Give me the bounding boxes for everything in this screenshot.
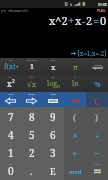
staticText: f(x) <box>4 62 16 72</box>
staticText: √x <box>27 79 37 89</box>
button[interactable]: − <box>86 144 108 162</box>
staticText: 9 <box>50 110 56 124</box>
staticText: e <box>74 75 76 78</box>
staticText: PLAN. <box>97 9 106 13</box>
button[interactable]: 1 <box>0 144 21 162</box>
staticText: − <box>94 147 100 159</box>
staticText: x^n nth power of x <box>1 9 28 13</box>
staticText: equal <box>94 162 101 165</box>
staticText: log <box>51 75 55 78</box>
button[interactable]: 2 <box>21 144 42 162</box>
button[interactable]: constants <box>21 58 42 75</box>
staticText: n <box>57 83 60 89</box>
button[interactable]: x squared <box>0 75 21 92</box>
staticText: ] <box>97 107 98 110</box>
staticText: copy <box>8 92 14 95</box>
button[interactable]: 6 <box>42 126 64 144</box>
staticText: . <box>30 165 33 177</box>
button[interactable]: 5 <box>21 126 42 144</box>
button[interactable]: + <box>64 144 86 162</box>
button[interactable]: × <box>64 126 86 144</box>
staticText: 7 <box>8 110 14 124</box>
button[interactable]: natural logarithm <box>64 75 86 92</box>
staticText: % <box>94 79 101 89</box>
staticText: 000 <box>8 162 13 165</box>
staticText: log <box>47 79 57 89</box>
staticText: x^2 <box>49 13 68 28</box>
button[interactable]: Backspace <box>64 92 86 107</box>
staticText: x <box>75 13 82 28</box>
button[interactable]: logarithm base n <box>42 75 64 92</box>
button[interactable]: function of x <box>0 58 21 75</box>
staticText: x <box>7 78 12 89</box>
staticText: + <box>68 13 75 28</box>
button[interactable]: expand settings <box>86 58 108 75</box>
button[interactable]: square root <box>21 75 42 92</box>
staticText: C <box>94 95 101 107</box>
staticText: {x=1,x=-2} <box>77 49 107 57</box>
staticText: expand <box>92 66 103 70</box>
button[interactable]: 4 <box>0 126 21 144</box>
staticText: 5 <box>29 128 35 142</box>
staticText: 8 <box>29 110 35 124</box>
staticText: x <box>52 162 54 165</box>
staticText: E <box>50 165 56 177</box>
button[interactable]: 8 <box>21 107 42 126</box>
staticText: redo <box>50 92 56 95</box>
button[interactable]: x^n nth power of x <box>0 8 108 58</box>
button[interactable]: percent <box>86 75 108 92</box>
staticText: out <box>95 92 99 95</box>
button[interactable]: 000 <box>0 162 21 180</box>
staticText: + <box>72 147 78 159</box>
button[interactable]: Copy <box>0 92 21 107</box>
staticText: ) <box>95 111 99 123</box>
button[interactable]: Clear <box>86 92 108 107</box>
staticText: vars. <box>50 58 56 61</box>
staticText: x <box>51 62 56 72</box>
staticText: 3 <box>50 146 56 160</box>
staticText: 2 <box>86 13 93 28</box>
button[interactable]: 7 <box>0 107 21 126</box>
button[interactable]: 9 <box>42 107 64 126</box>
staticText: x^y <box>8 75 13 78</box>
button[interactable]: . <box>21 162 42 180</box>
staticText: 6 <box>50 128 56 142</box>
staticText: del <box>73 92 77 95</box>
staticText: ÷ <box>95 130 100 141</box>
staticText: 1 <box>30 62 34 72</box>
button[interactable]: Paste <box>21 92 42 107</box>
staticText: mod <box>69 168 82 175</box>
staticText: × <box>73 130 78 141</box>
staticText: 1 <box>8 146 14 160</box>
staticText: paste <box>28 92 35 95</box>
staticText: config. <box>94 63 102 66</box>
staticText: constants <box>26 58 38 61</box>
staticText: 0 <box>100 13 107 28</box>
button[interactable]: mod <box>64 162 86 180</box>
staticText: 2 <box>29 146 35 160</box>
staticText: - <box>82 13 86 28</box>
button[interactable]: x <box>42 162 64 180</box>
staticText: ( <box>73 111 77 123</box>
staticText: 2 <box>12 78 15 85</box>
button[interactable]: 3 <box>42 144 64 162</box>
button[interactable]: variable x <box>42 58 64 75</box>
button[interactable]: [ <box>64 107 86 126</box>
staticText: n√x <box>29 75 34 78</box>
staticText: undo <box>49 99 57 103</box>
staticText: = <box>93 13 100 28</box>
button[interactable]: Undo <box>42 92 64 107</box>
staticText: π <box>73 62 78 72</box>
button[interactable]: key <box>86 162 108 180</box>
staticText: 01:05 <box>98 2 107 7</box>
button[interactable]: ] <box>86 107 108 126</box>
staticText: 4 <box>8 128 14 142</box>
button[interactable]: pi <box>64 58 86 75</box>
staticText: ln <box>72 79 79 89</box>
button[interactable]: ÷ <box>86 126 108 144</box>
staticText: [ <box>75 107 76 110</box>
staticText: 0 <box>8 164 14 178</box>
staticText: int. <box>9 58 13 61</box>
